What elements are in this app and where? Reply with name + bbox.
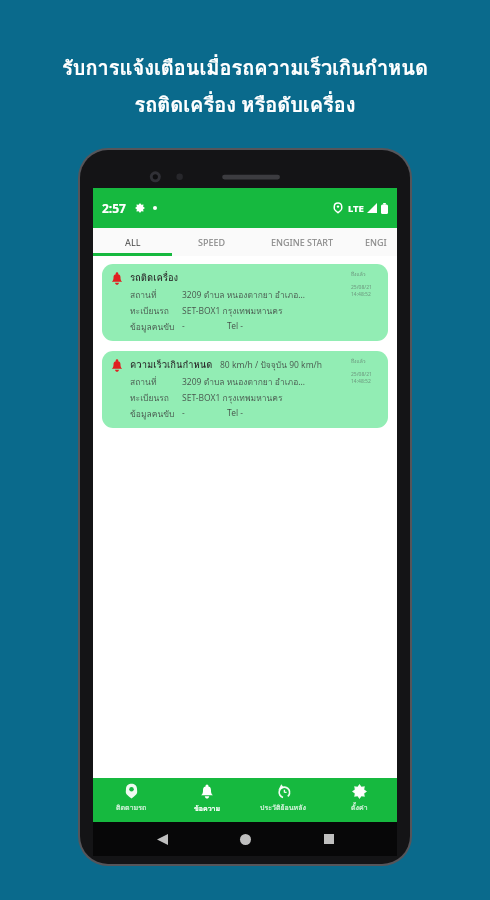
button[interactable]: Home — [230, 824, 260, 854]
staticText: SET-BOX1 กรุงเทพมหานคร — [182, 391, 283, 405]
staticText: 3209 ตำบล หนองตากยา อำเภอ… — [182, 375, 306, 389]
staticText: ถึงแล้ว — [351, 357, 366, 365]
staticText: รถติดเครื่อง — [130, 270, 179, 285]
button[interactable]: Recent apps — [314, 824, 344, 854]
staticText: รถติดเครื่อง หรือดับเครื่อง — [134, 89, 356, 121]
button[interactable]: Track vehicle — [93, 778, 169, 822]
button[interactable]: ALL — [93, 228, 172, 256]
staticText: ENGI — [365, 236, 387, 248]
staticText: - — [182, 320, 185, 332]
staticText: ตั้งค่า — [351, 802, 368, 813]
staticText: ถึงแล้ว — [351, 270, 366, 278]
staticText: 14:48:52 — [351, 291, 371, 298]
staticText: ข้อความ — [194, 803, 221, 814]
button[interactable]: Back — [147, 824, 177, 854]
button[interactable]: ENGI — [354, 228, 397, 256]
staticText: SPEED — [198, 236, 226, 248]
staticText: ติดตามรถ — [116, 802, 147, 813]
staticText: - — [182, 407, 185, 419]
staticText: ความเร็วเกินกำหนด — [130, 357, 213, 372]
staticText: ENGINE START — [271, 236, 334, 248]
staticText: ทะเบียนรถ — [130, 391, 169, 405]
staticText: Tel - — [227, 320, 244, 332]
staticText: 3209 ตำบล หนองตากยา อำเภอ… — [182, 288, 306, 302]
staticText: 2:57 — [102, 200, 126, 216]
button[interactable]: ความเร็วเกินกำหนด — [102, 351, 388, 428]
staticText: ประวัติย้อนหลัง — [260, 802, 306, 813]
staticText: SET-BOX1 กรุงเทพมหานคร — [182, 304, 283, 318]
staticText: สถานที่ — [130, 375, 157, 389]
staticText: สถานที่ — [130, 288, 157, 302]
staticText: 14:48:52 — [351, 378, 371, 385]
button[interactable]: SPEED — [172, 228, 251, 256]
button[interactable]: Messages — [169, 778, 245, 822]
staticText: 25/08/21 — [351, 284, 372, 291]
button[interactable]: รถติดเครื่อง — [102, 264, 388, 341]
staticText: ข้อมูลคนขับ — [130, 320, 175, 334]
button[interactable]: Settings — [321, 778, 397, 822]
button[interactable]: History — [245, 778, 321, 822]
staticText: ทะเบียนรถ — [130, 304, 169, 318]
staticText: ALL — [125, 236, 141, 248]
staticText: 25/08/21 — [351, 371, 372, 378]
staticText: ข้อมูลคนขับ — [130, 407, 175, 421]
staticText: Tel - — [227, 407, 244, 419]
staticText: รับการแจ้งเตือนเมื่อรถความเร็วเกินกำหนด — [62, 52, 428, 84]
staticText: 80 km/h / ปัจจุบัน 90 km/h — [220, 358, 323, 372]
staticText: LTE — [348, 202, 364, 215]
button[interactable]: ENGINE START — [251, 228, 354, 256]
